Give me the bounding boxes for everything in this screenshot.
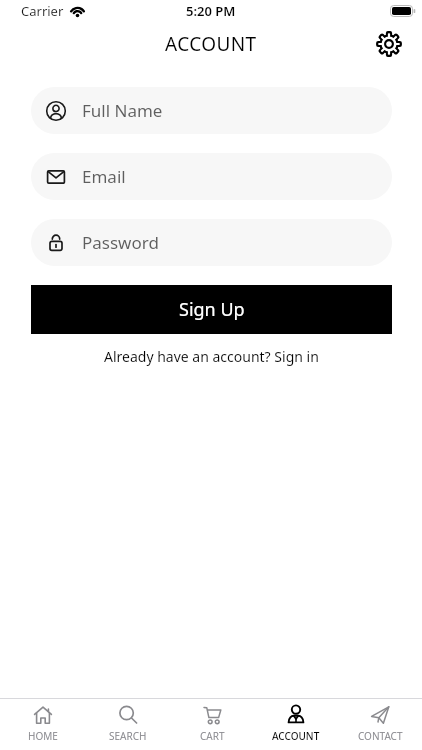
staticText: Already have an account? Sign in <box>104 347 319 366</box>
staticText: SEARCH <box>109 729 147 743</box>
button[interactable]: ACCOUNT <box>254 699 338 750</box>
button[interactable] <box>375 30 403 58</box>
staticText: ACCOUNT <box>272 729 320 743</box>
button[interactable]: Already have an account? Sign in <box>104 347 319 366</box>
staticText: Full Name <box>82 99 163 122</box>
button[interactable]: Full Name <box>31 87 392 134</box>
button[interactable]: CART <box>170 699 254 750</box>
button[interactable]: Password <box>31 219 392 266</box>
button[interactable]: HOME <box>0 699 85 750</box>
button[interactable]: SEARCH <box>85 699 170 750</box>
staticText: CART <box>200 729 225 743</box>
staticText: Email <box>82 165 126 188</box>
staticText: HOME <box>28 729 58 743</box>
staticText: Carrier <box>21 2 64 20</box>
staticText: Password <box>82 231 159 254</box>
staticText: Sign Up <box>179 297 245 322</box>
staticText: ACCOUNT <box>165 31 257 57</box>
button[interactable]: CONTACT <box>338 699 422 750</box>
staticText: CONTACT <box>358 729 403 743</box>
button[interactable]: Email <box>31 153 392 200</box>
staticText: 5:20 PM <box>186 2 236 20</box>
button[interactable]: Sign Up <box>31 285 392 334</box>
